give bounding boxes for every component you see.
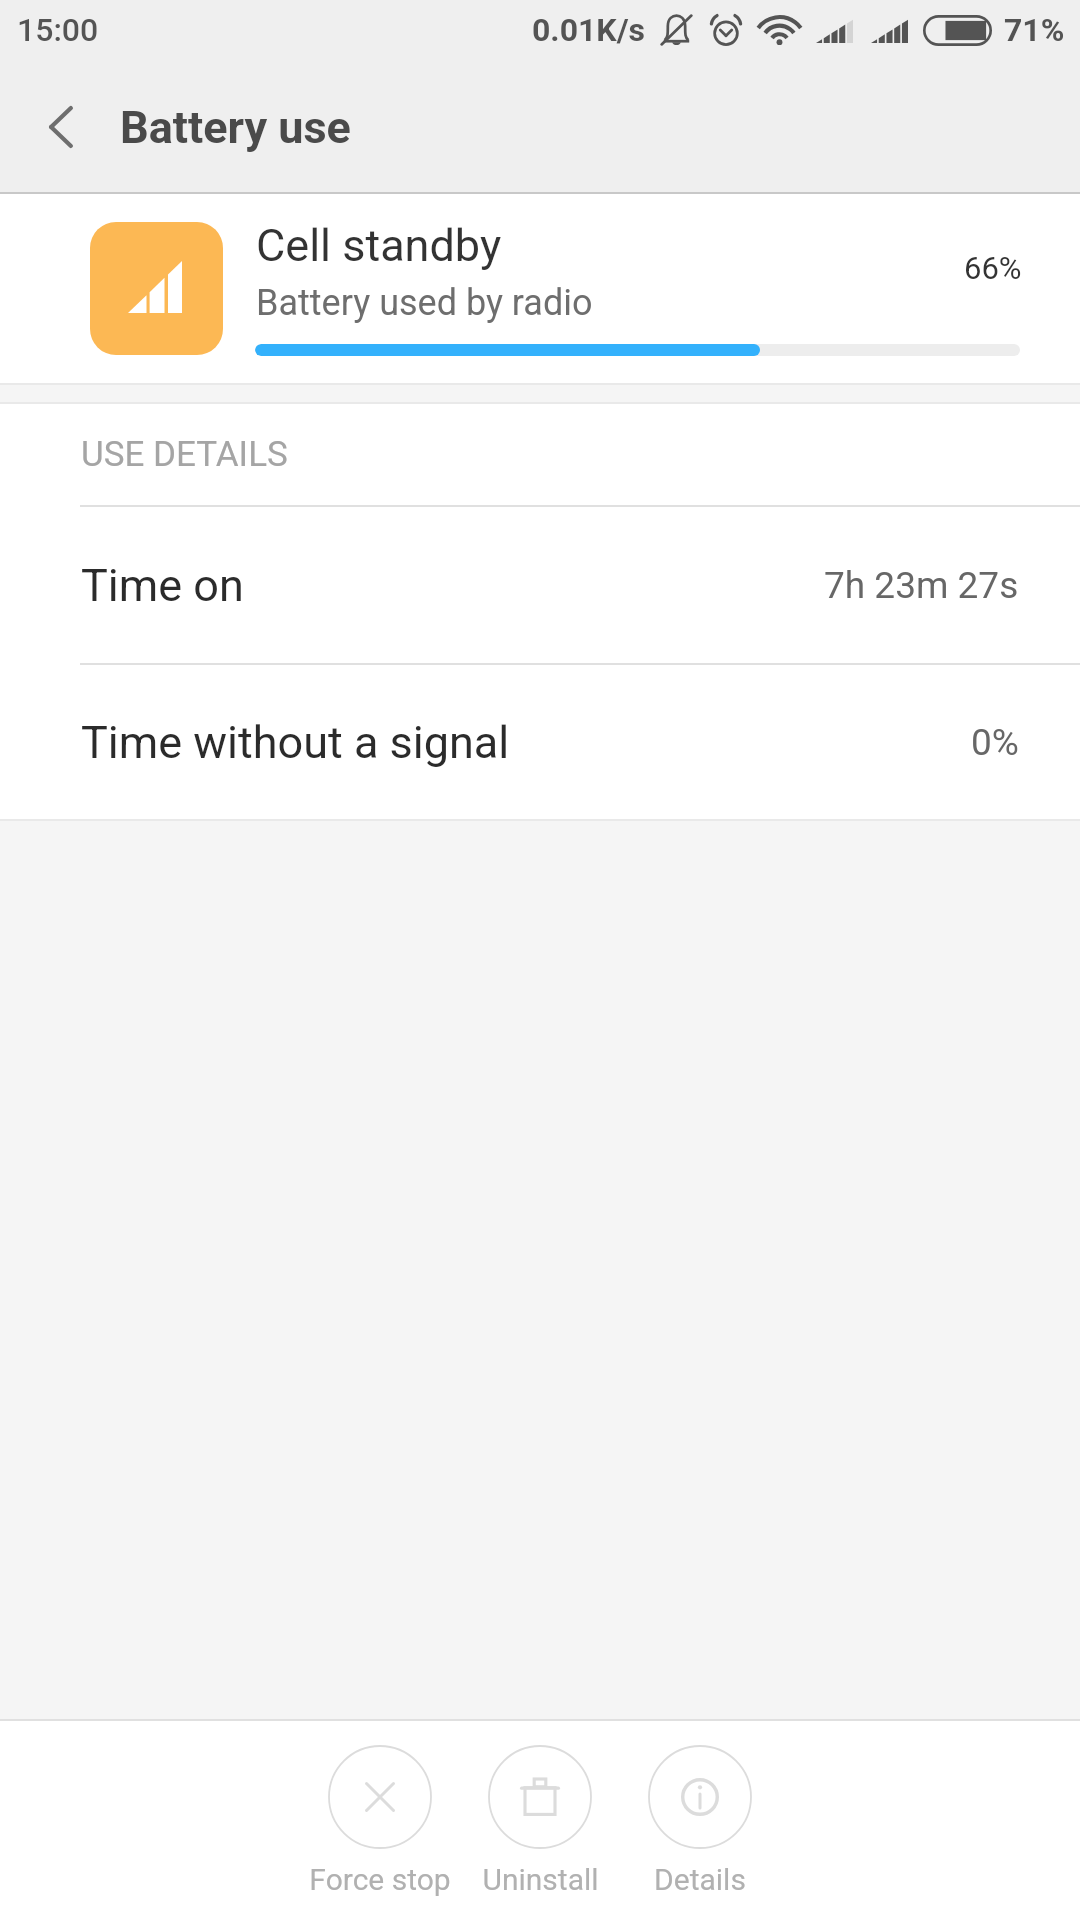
staticText: USE DETAILS — [81, 434, 288, 475]
staticText: 0% — [971, 721, 1019, 764]
staticText: Time on — [81, 559, 244, 612]
staticText: Battery use — [120, 101, 351, 154]
staticText: 0.01K/s — [532, 11, 646, 49]
staticText: Cell standby — [256, 219, 502, 272]
staticText: 15:00 — [17, 11, 99, 49]
staticText: 7h 23m 27s — [824, 564, 1019, 607]
button[interactable]: Time without a signal — [0, 665, 1080, 819]
staticText: Details — [654, 1862, 746, 1897]
button[interactable]: Details — [610, 1745, 790, 1897]
button[interactable]: Force stop — [290, 1745, 470, 1897]
staticText: Battery used by radio — [256, 282, 593, 324]
button[interactable]: Uninstall — [450, 1745, 630, 1897]
staticText: Force stop — [309, 1862, 451, 1897]
staticText: 71% — [1004, 11, 1065, 49]
staticText: 66% — [964, 250, 1022, 286]
staticText: Time without a signal — [81, 716, 510, 769]
button[interactable]: Time on — [0, 507, 1080, 663]
button[interactable]: Back — [9, 75, 113, 179]
staticText: Uninstall — [482, 1862, 599, 1897]
